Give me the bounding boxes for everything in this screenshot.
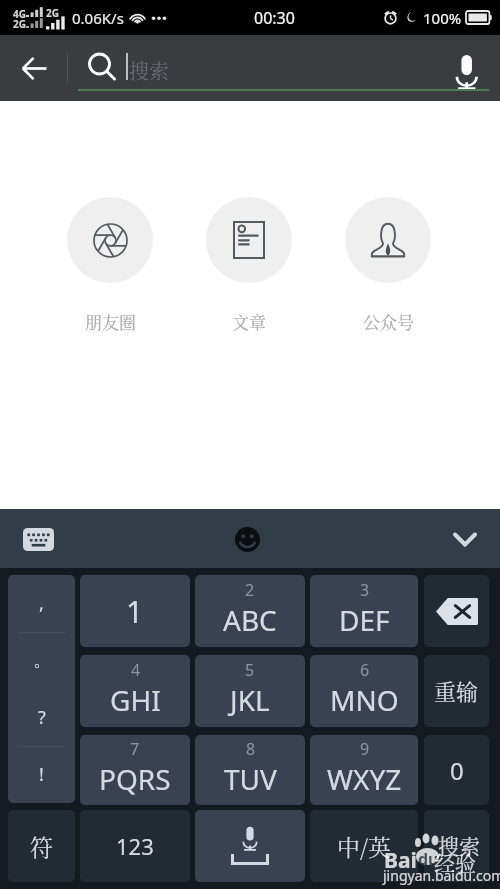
button[interactable]: 文章 bbox=[206, 197, 292, 333]
button[interactable]: 中/英 bbox=[310, 810, 418, 882]
button[interactable]: 朋友圈 bbox=[67, 197, 153, 333]
button[interactable]: 3 bbox=[310, 575, 418, 647]
staticText: GHI bbox=[110, 681, 161, 719]
staticText: 2 bbox=[245, 579, 255, 601]
staticText: 0 bbox=[450, 754, 464, 787]
staticText: jingyan.baidu.com bbox=[383, 866, 500, 885]
staticText: DEF bbox=[339, 601, 390, 639]
button[interactable]: Emoji bbox=[224, 516, 270, 562]
button[interactable]: 9 bbox=[310, 735, 418, 805]
staticText: 搜索 bbox=[438, 830, 480, 860]
staticText: 6 bbox=[360, 659, 370, 681]
staticText: 4 bbox=[131, 659, 141, 681]
button[interactable]: 0 bbox=[424, 735, 489, 805]
button[interactable]: Back bbox=[4, 38, 64, 98]
staticText: 中/英 bbox=[337, 830, 392, 863]
staticText: ABC bbox=[223, 601, 277, 639]
staticText: 2G bbox=[46, 6, 59, 20]
staticText: TUV bbox=[224, 760, 277, 798]
staticText: 4G bbox=[13, 7, 26, 21]
button[interactable]: 公众号 bbox=[345, 197, 431, 333]
staticText: 公众号 bbox=[363, 309, 414, 333]
staticText: WXYZ bbox=[327, 760, 402, 798]
button[interactable]: Switch keyboard bbox=[12, 517, 64, 561]
staticText: 经验 bbox=[434, 847, 476, 877]
staticText: 搜索 bbox=[129, 56, 169, 85]
button[interactable]: 7 bbox=[80, 735, 190, 805]
button[interactable]: 1 bbox=[80, 575, 190, 647]
staticText: 朋友圈 bbox=[85, 309, 136, 333]
button[interactable]: 6 bbox=[310, 655, 418, 727]
staticText: 8 bbox=[246, 738, 256, 760]
button[interactable]: Backspace bbox=[424, 575, 489, 647]
staticText: 00:30 bbox=[254, 7, 295, 29]
staticText: JKL bbox=[230, 681, 270, 719]
staticText: 123 bbox=[116, 831, 154, 861]
button[interactable]: , bbox=[8, 575, 75, 803]
staticText: ? bbox=[38, 705, 46, 730]
staticText: MNO bbox=[330, 681, 399, 719]
staticText: , bbox=[39, 591, 44, 616]
staticText: 文章 bbox=[232, 309, 266, 333]
button[interactable] bbox=[424, 810, 489, 882]
staticText: 1 bbox=[126, 591, 144, 632]
staticText: 0.06K/s bbox=[72, 8, 124, 28]
button[interactable]: 2 bbox=[195, 575, 305, 647]
button[interactable]: 5 bbox=[195, 655, 305, 727]
staticText: 符 bbox=[30, 830, 53, 863]
staticText: 3 bbox=[360, 579, 370, 601]
button[interactable]: 123 bbox=[80, 810, 190, 882]
staticText: 5 bbox=[245, 659, 255, 681]
button[interactable]: 搜索 bbox=[78, 38, 430, 94]
button[interactable]: Voice search bbox=[439, 38, 495, 94]
button[interactable]: 符 bbox=[8, 810, 75, 882]
button[interactable]: 8 bbox=[195, 735, 305, 805]
button[interactable]: Hide keyboard bbox=[441, 517, 489, 562]
button[interactable]: Space and voice input bbox=[195, 810, 305, 882]
button[interactable]: 4 bbox=[80, 655, 190, 727]
staticText: 。 bbox=[33, 649, 51, 672]
staticText: 9 bbox=[360, 738, 370, 760]
staticText: PQRS bbox=[99, 760, 171, 798]
staticText: ! bbox=[39, 762, 44, 787]
staticText: 100% bbox=[423, 8, 462, 28]
staticText: 7 bbox=[130, 738, 140, 760]
staticText: Bai bbox=[384, 846, 417, 875]
staticText: du bbox=[418, 848, 439, 870]
button[interactable]: 重输 bbox=[424, 655, 489, 727]
staticText: 重输 bbox=[434, 675, 479, 707]
staticText: 2G bbox=[13, 17, 26, 31]
